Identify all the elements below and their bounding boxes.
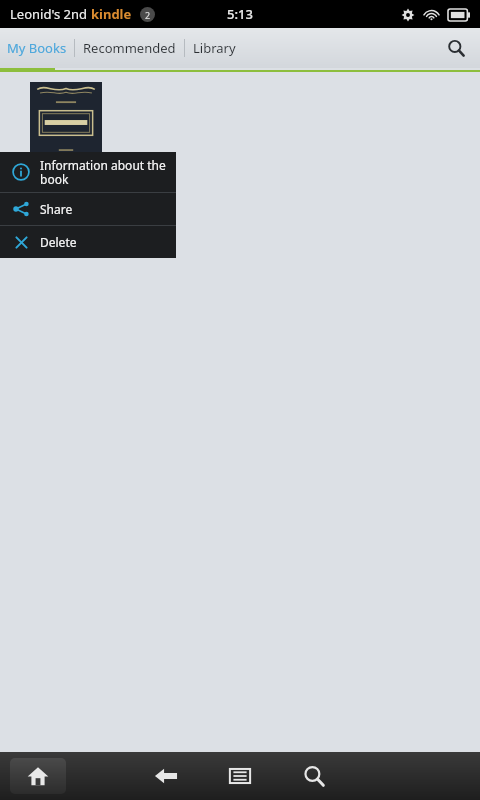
staticText: Leonid's 2nd [10, 5, 91, 23]
staticText: My Books [7, 39, 67, 57]
button[interactable]: My Books [0, 28, 74, 68]
button[interactable]: Мертвые души [30, 82, 102, 207]
staticText: Мертвые души [30, 178, 102, 193]
button[interactable]: Recommended [75, 28, 184, 68]
staticText: Share [40, 201, 73, 217]
staticText: Library [193, 39, 236, 57]
button[interactable]: Library [185, 28, 244, 68]
staticText: kindle [91, 5, 132, 23]
staticText: 5:13 [227, 5, 253, 23]
staticText: 2 [145, 9, 151, 21]
staticText: Delete [40, 234, 77, 250]
button[interactable]: Menu [218, 754, 262, 798]
button[interactable]: Search [292, 754, 336, 798]
button[interactable]: Back [144, 754, 188, 798]
staticText: Гоголь Н.В. [30, 193, 85, 207]
staticText: Recommended [83, 39, 176, 57]
button[interactable]: Information about the book [0, 152, 176, 192]
button[interactable]: Delete [0, 226, 176, 258]
button[interactable]: Home [10, 758, 66, 794]
staticText: Information about the book [40, 157, 166, 188]
button[interactable]: Share [0, 193, 176, 225]
button[interactable]: Search [432, 28, 480, 68]
